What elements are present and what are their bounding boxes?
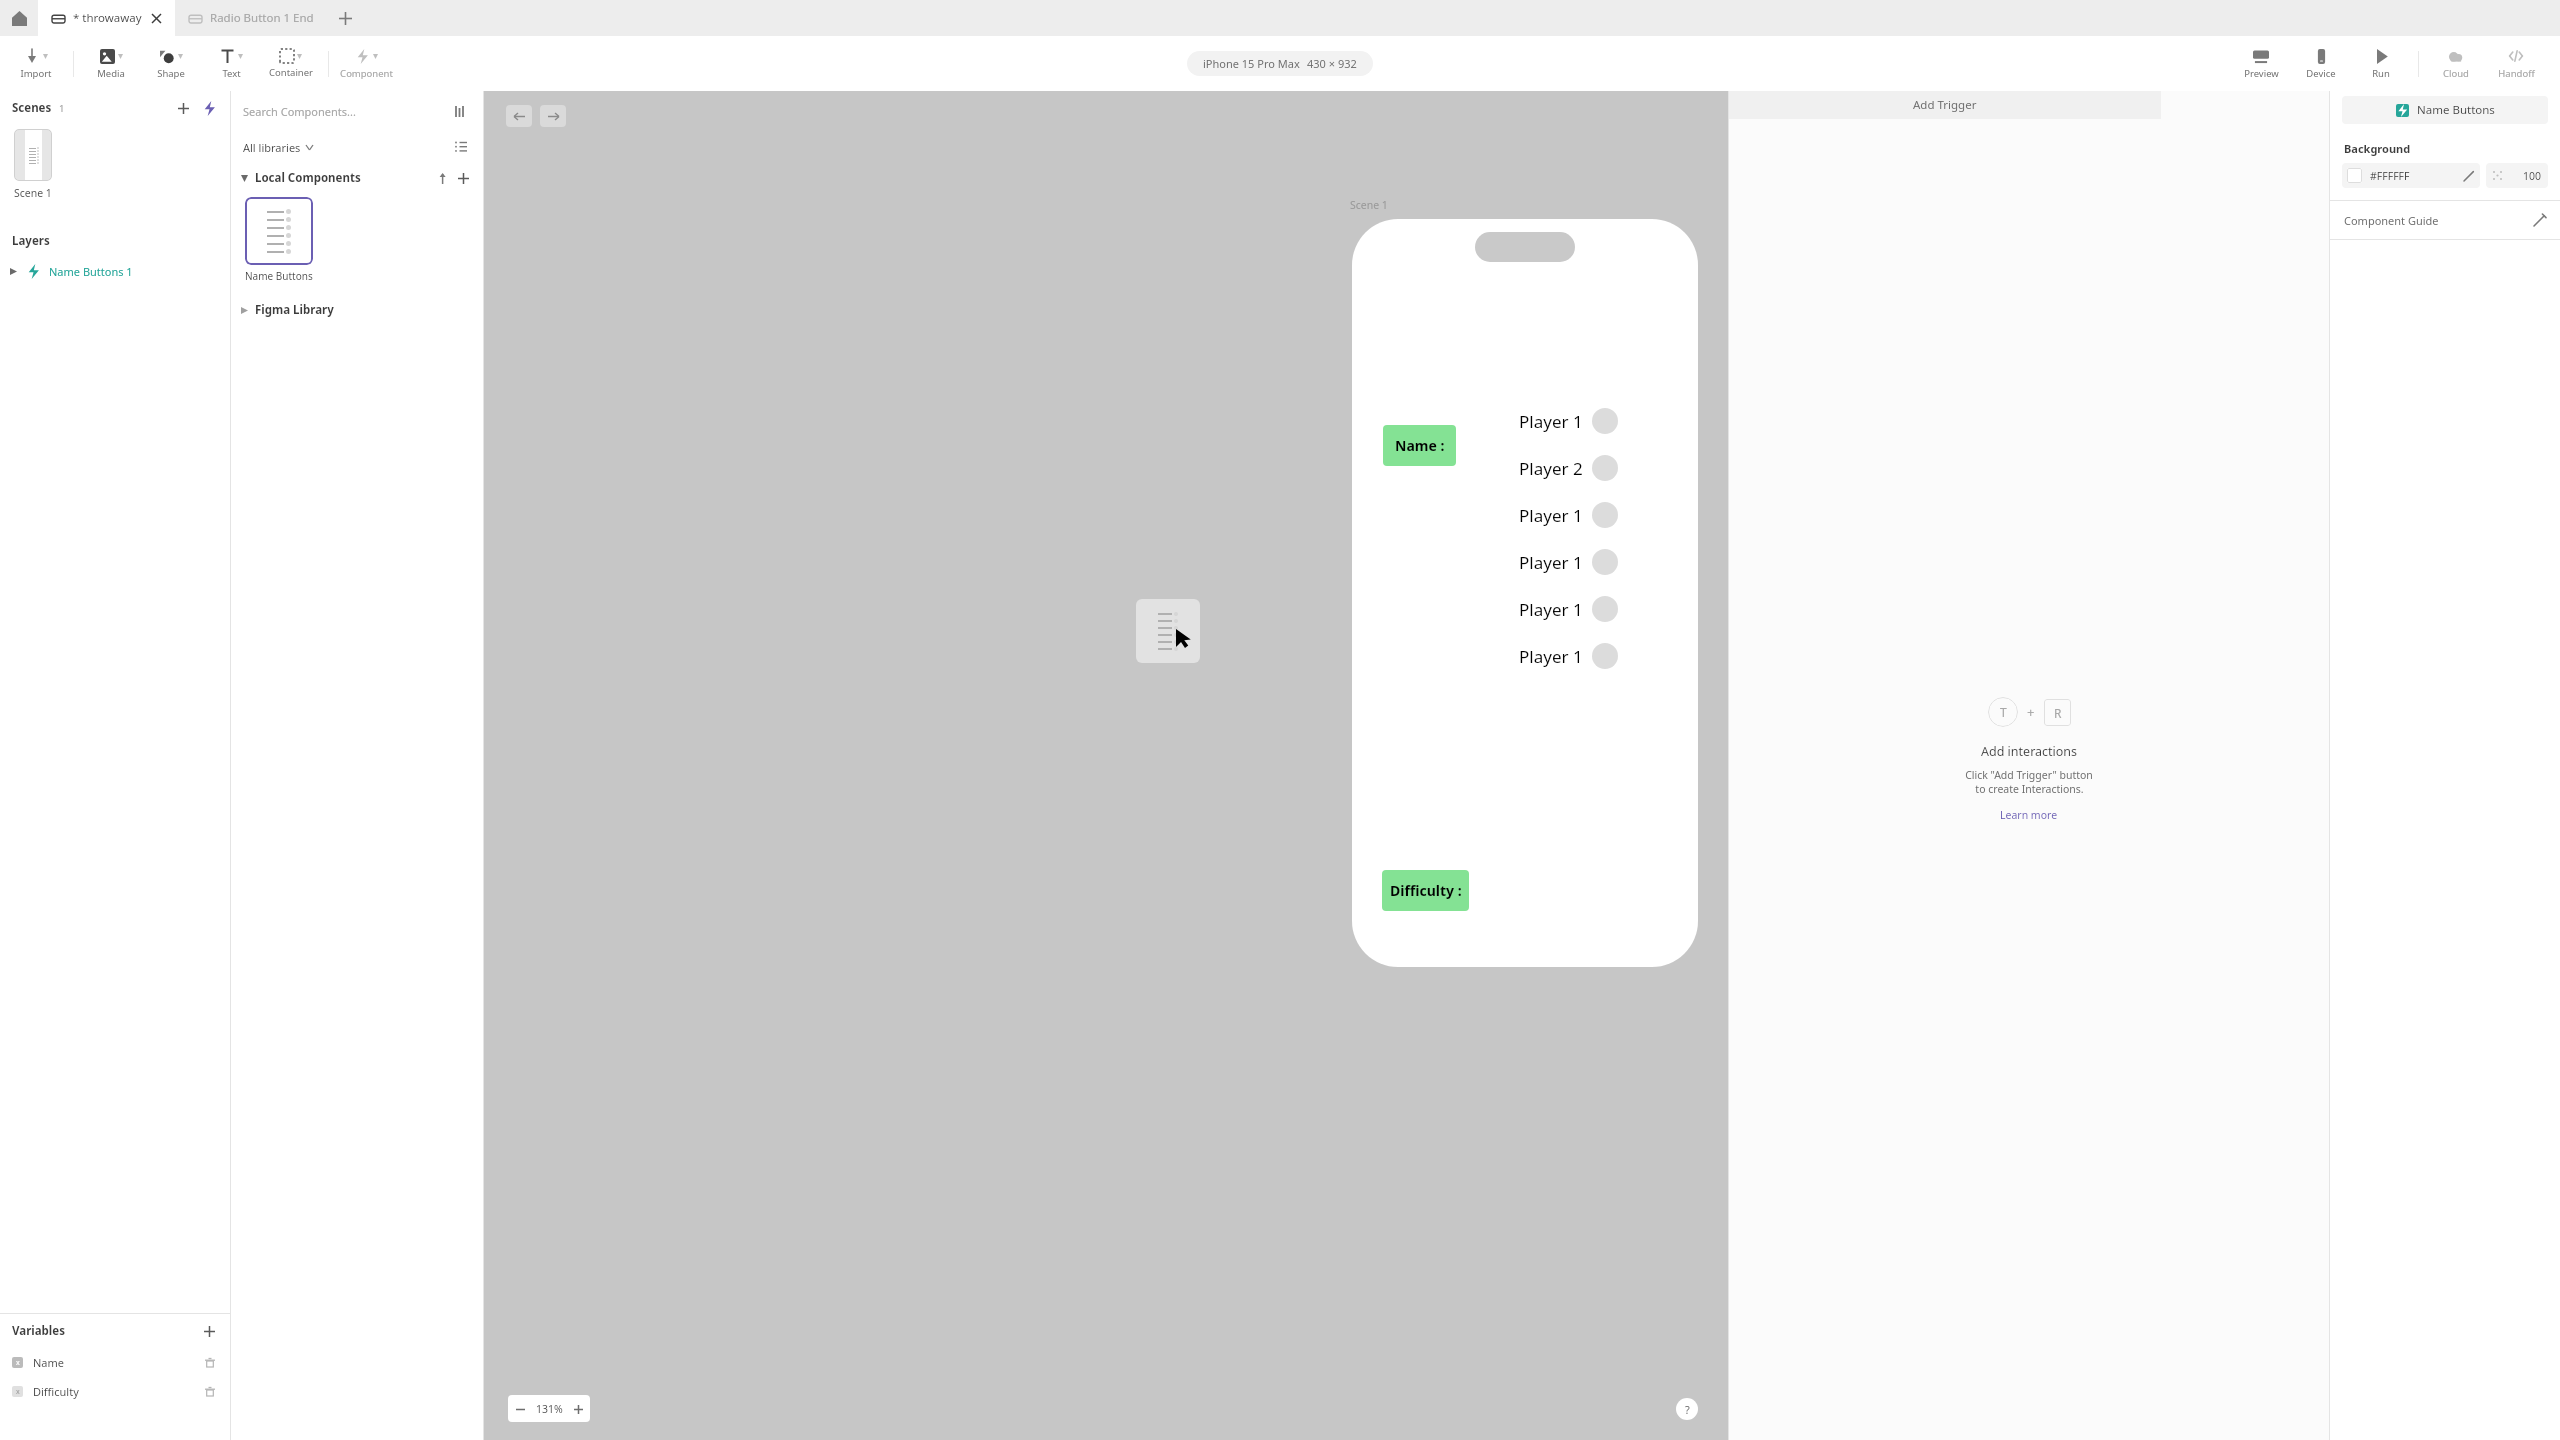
staticText: Component <box>340 67 393 80</box>
button[interactable]: List view <box>451 137 471 157</box>
staticText: Run <box>2372 67 2390 80</box>
staticText: Name Buttons 1 <box>49 264 133 279</box>
button[interactable]: Add Trigger <box>1729 91 2161 119</box>
staticText: Player 1 <box>1519 410 1583 433</box>
staticText: Name Buttons <box>245 269 313 283</box>
button[interactable]: Figma Library <box>231 297 483 323</box>
staticText: #FFFFFF <box>2370 169 2410 183</box>
staticText: Local Components <box>255 170 361 186</box>
staticText: All libraries <box>243 140 301 155</box>
staticText: Layers <box>12 233 50 249</box>
staticText: 430 × 932 <box>1307 56 1357 71</box>
button[interactable]: Learn more <box>2000 808 2058 822</box>
button[interactable]: Text <box>201 45 261 84</box>
button[interactable]: Publish <box>433 168 453 188</box>
staticText: x <box>16 1387 20 1397</box>
button[interactable]: All libraries <box>243 140 313 155</box>
button[interactable]: Add Variables <box>200 1322 218 1340</box>
staticText: to create Interactions. <box>1975 782 2084 796</box>
button[interactable]: Radio Button 1 End <box>175 0 328 36</box>
staticText: 1 <box>59 102 65 115</box>
button[interactable]: Home <box>0 0 38 36</box>
staticText: Device <box>2306 67 2336 80</box>
button[interactable]: * throwaway <box>38 0 175 36</box>
button[interactable]: Difficulty : <box>1382 870 1469 911</box>
button[interactable]: Add Scenes <box>174 99 192 117</box>
staticText: Add interactions <box>1981 743 2078 760</box>
button[interactable]: #FFFFFF <box>2342 163 2480 188</box>
staticText: Player 1 <box>1519 504 1583 527</box>
staticText: Difficulty <box>33 1384 79 1399</box>
staticText: x <box>16 1358 20 1368</box>
button[interactable]: Delete Difficulty <box>202 1384 218 1400</box>
staticText: Preview <box>2244 67 2279 80</box>
staticText: Player 2 <box>1519 457 1583 480</box>
staticText: Difficulty : <box>1390 881 1462 900</box>
staticText: Radio Button 1 End <box>210 10 314 26</box>
staticText: Learn more <box>2000 808 2058 822</box>
staticText: + <box>2027 703 2035 721</box>
staticText: * throwaway <box>73 10 142 26</box>
staticText: Add Trigger <box>1913 97 1977 113</box>
staticText: Player 1 <box>1519 645 1583 668</box>
button[interactable]: Zoom out <box>508 1397 532 1421</box>
button[interactable]: Smart scene <box>200 99 218 117</box>
button[interactable]: Media <box>81 45 141 84</box>
button[interactable] <box>245 197 313 265</box>
button[interactable]: Delete Name <box>202 1355 218 1371</box>
button[interactable]: Shape <box>141 45 201 84</box>
button[interactable]: Handoff <box>2486 44 2546 84</box>
staticText: Search Components... <box>243 104 356 119</box>
staticText: Cloud <box>2443 67 2469 80</box>
staticText: Name : <box>1395 436 1445 455</box>
staticText: Component Guide <box>2344 213 2439 228</box>
button[interactable]: Player 1 <box>1519 643 1618 669</box>
staticText: Import <box>20 67 52 80</box>
button[interactable]: Zoom in <box>566 1397 590 1421</box>
staticText: Scene 1 <box>14 186 52 200</box>
staticText: 100 <box>2523 169 2542 183</box>
staticText: Click "Add Trigger" button <box>1965 768 2093 782</box>
button[interactable]: Player 1 <box>1519 596 1618 622</box>
button[interactable]: Player 1 <box>1519 549 1618 575</box>
staticText: ? <box>1685 1402 1690 1417</box>
button[interactable] <box>14 129 52 181</box>
button[interactable]: Cloud <box>2426 44 2486 84</box>
staticText: Name <box>33 1355 65 1370</box>
button[interactable]: New tab <box>328 0 362 36</box>
button[interactable]: Name Buttons 1 <box>0 258 230 284</box>
button[interactable]: Run <box>2351 45 2411 84</box>
button[interactable]: Sort components <box>451 101 471 121</box>
staticText: Handoff <box>2498 67 2535 80</box>
button[interactable]: Search Components... <box>243 104 451 119</box>
staticText: Scene 1 <box>1350 198 1388 212</box>
staticText: Player 1 <box>1519 551 1583 574</box>
button[interactable]: Name : <box>1383 425 1456 466</box>
button[interactable]: x <box>0 1348 230 1377</box>
button[interactable]: Preview <box>2231 44 2291 84</box>
staticText: Text <box>222 67 241 80</box>
staticText: Figma Library <box>255 302 334 318</box>
button[interactable]: Name Buttons <box>2342 96 2548 124</box>
button[interactable]: Help <box>1676 1398 1698 1420</box>
button[interactable]: Player 1 <box>1519 502 1618 528</box>
button[interactable]: Component <box>336 45 396 84</box>
button[interactable]: Import <box>6 44 66 84</box>
button[interactable]: Back <box>506 105 532 127</box>
button[interactable]: Player 1 <box>1519 408 1618 434</box>
button[interactable]: Container <box>261 45 321 83</box>
button[interactable]: Component Guide <box>2330 201 2560 239</box>
staticText: Shape <box>157 67 185 80</box>
staticText: R <box>2054 705 2062 721</box>
button[interactable]: Player 2 <box>1519 455 1618 481</box>
staticText: Background <box>2344 141 2411 156</box>
button[interactable]: Device <box>2291 45 2351 84</box>
staticText: 131% <box>536 1402 563 1416</box>
button[interactable]: x <box>0 1377 230 1406</box>
button[interactable]: Add component <box>453 168 473 188</box>
button[interactable]: iPhone 15 Pro Max <box>1187 51 1373 76</box>
button[interactable]: 100 <box>2486 163 2548 188</box>
staticText: Container <box>269 66 313 79</box>
staticText: Media <box>97 67 125 80</box>
button[interactable]: Forward <box>540 105 566 127</box>
